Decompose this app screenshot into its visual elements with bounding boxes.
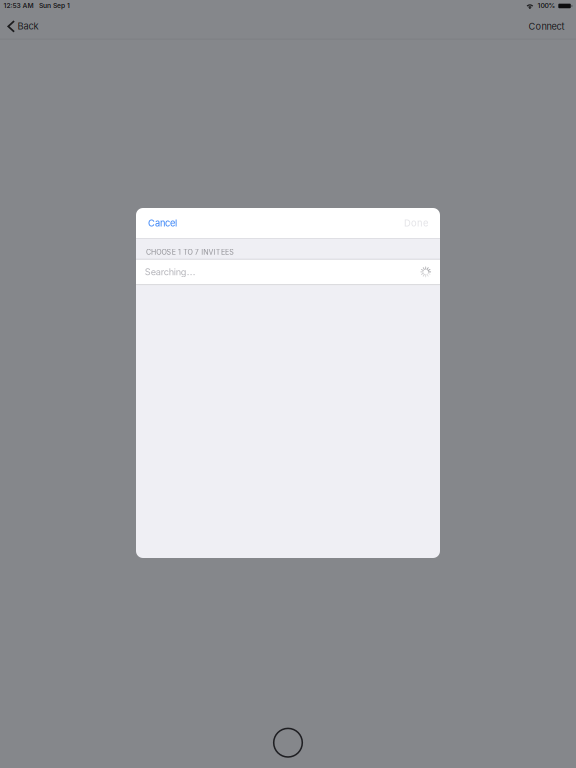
button[interactable]: Done: [392, 208, 440, 238]
staticText: CHOOSE 1 TO 7 INVITEES: [146, 248, 234, 256]
staticText: Connect: [528, 21, 564, 32]
button[interactable]: Back: [0, 16, 46, 37]
staticText: Back: [18, 21, 39, 32]
staticText: Done: [404, 217, 428, 229]
button[interactable]: Cancel: [136, 208, 189, 238]
staticText: Sun Sep 1: [39, 2, 70, 10]
staticText: Searching...: [145, 266, 196, 277]
button[interactable]: Connect: [517, 16, 576, 37]
staticText: 12:53 AM: [4, 2, 34, 10]
staticText: 100%: [537, 2, 555, 10]
staticText: Cancel: [148, 217, 177, 229]
